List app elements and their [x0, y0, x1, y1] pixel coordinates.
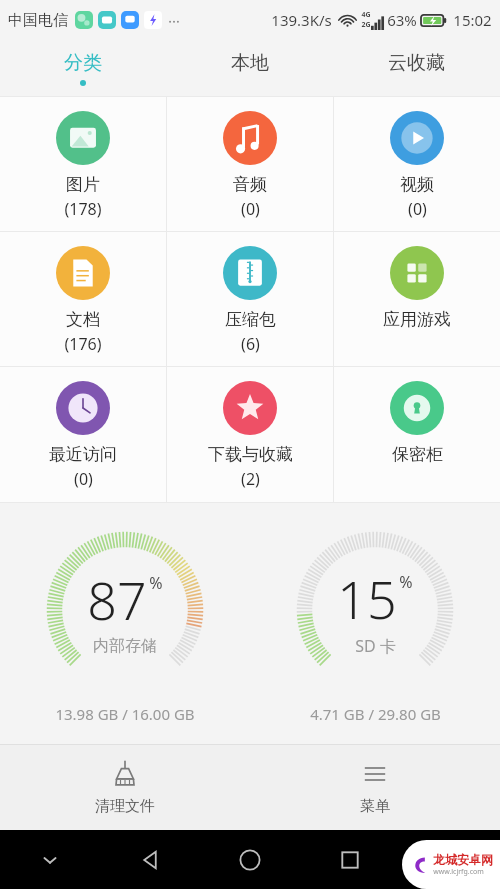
button[interactable]: 音频 — [167, 97, 333, 231]
staticText: 文档 — [66, 309, 100, 330]
staticText: 菜单 — [360, 797, 390, 816]
button[interactable]: 图片 — [0, 97, 166, 231]
button[interactable]: 压缩包 — [167, 232, 333, 366]
staticText: 图片 — [66, 174, 100, 195]
staticText: 最近访问 — [49, 444, 117, 465]
button[interactable]: 最近访问 — [0, 367, 166, 502]
staticText: (0) — [241, 198, 260, 220]
staticText: 压缩包 — [225, 309, 276, 330]
staticText: 应用游戏 — [383, 309, 451, 330]
staticText: SD 卡 — [355, 635, 396, 657]
staticText: 13.98 GB / 16.00 GB — [55, 704, 195, 724]
staticText: 视频 — [400, 174, 434, 195]
button[interactable]: 分类 — [0, 40, 166, 96]
button[interactable]: 保密柜 — [334, 367, 500, 502]
staticText: 15 — [337, 563, 397, 634]
staticText: % — [399, 571, 413, 593]
button[interactable]: Back — [100, 830, 200, 889]
staticText: 63% — [387, 10, 417, 30]
staticText: 内部存储 — [93, 636, 157, 656]
staticText: 15:02 — [453, 10, 492, 30]
staticText: (176) — [64, 333, 102, 355]
button[interactable]: 云收藏 — [333, 40, 500, 96]
staticText: www.lcjrfg.com — [433, 867, 484, 877]
staticText: (6) — [241, 333, 260, 355]
button[interactable]: Hide — [0, 830, 100, 889]
button[interactable]: Recents — [300, 830, 400, 889]
staticText: 中国电信 — [8, 11, 68, 30]
staticText: (2) — [241, 468, 260, 490]
button[interactable]: 视频 — [334, 97, 500, 231]
button[interactable]: 87 — [0, 524, 250, 724]
staticText: 87 — [87, 564, 147, 635]
staticText: 139.3K/s — [271, 10, 332, 30]
staticText: 下载与收藏 — [208, 444, 293, 465]
staticText: 4.71 GB / 29.80 GB — [310, 704, 441, 724]
button[interactable]: 清理文件 — [0, 745, 250, 830]
staticText: 音频 — [233, 174, 267, 195]
staticText: 分类 — [64, 51, 102, 75]
staticText: % — [149, 572, 163, 594]
staticText: 龙城安卓网 — [433, 852, 493, 867]
staticText: (0) — [74, 468, 93, 490]
button[interactable]: 菜单 — [250, 745, 500, 830]
staticText: 云收藏 — [388, 51, 445, 75]
staticText: 4G — [361, 10, 371, 20]
staticText: (0) — [408, 198, 427, 220]
button[interactable]: 本地 — [166, 40, 333, 96]
staticText: 本地 — [231, 51, 269, 75]
button[interactable]: 下载与收藏 — [167, 367, 333, 502]
button[interactable]: Home — [200, 830, 300, 889]
staticText: (178) — [64, 198, 102, 220]
staticText: 2G — [361, 20, 371, 30]
staticText: 保密柜 — [392, 444, 443, 465]
staticText: 清理文件 — [95, 797, 155, 816]
button[interactable]: 15 — [250, 524, 500, 724]
button[interactable]: 应用游戏 — [334, 232, 500, 366]
button[interactable]: 文档 — [0, 232, 166, 366]
